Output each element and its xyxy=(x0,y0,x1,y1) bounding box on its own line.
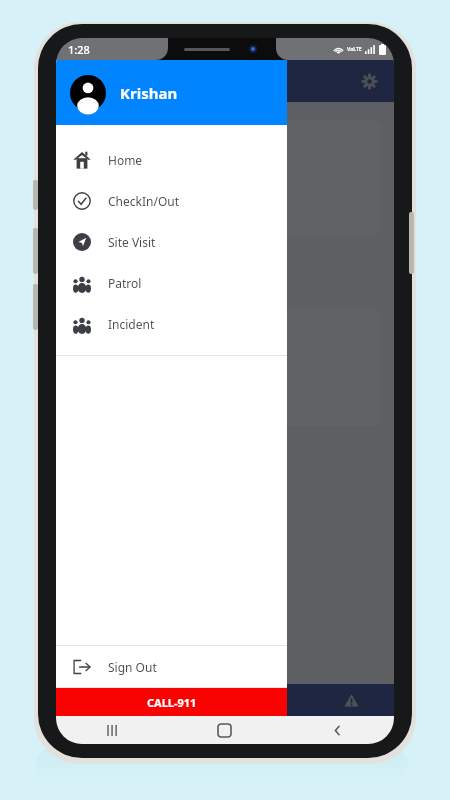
button[interactable]: CALL-911 xyxy=(56,688,287,716)
button[interactable]: Home xyxy=(56,684,140,716)
button[interactable]: CheckIn/Out xyxy=(56,180,287,221)
button[interactable]: Settings xyxy=(356,68,382,94)
button[interactable]: Incident xyxy=(70,309,380,426)
button[interactable]: Incident xyxy=(309,684,394,716)
button[interactable]: Patrol xyxy=(224,684,309,716)
staticText: Sign Out xyxy=(108,659,157,675)
button[interactable]: Home xyxy=(56,139,287,180)
staticText: Site Visit xyxy=(108,234,156,250)
button[interactable]: Krishan xyxy=(70,60,287,125)
button[interactable]: Patrol xyxy=(56,262,287,303)
button[interactable]: Incident xyxy=(56,303,287,344)
staticText: VoLTE xyxy=(347,46,362,53)
button[interactable]: Recents xyxy=(56,716,168,744)
staticText: CheckIn/Out xyxy=(108,193,180,209)
staticText: Patrol xyxy=(108,275,142,291)
button[interactable]: CheckIn xyxy=(140,684,224,716)
staticText: Home xyxy=(108,152,143,168)
button[interactable]: Home xyxy=(168,716,281,744)
staticText: Krishan xyxy=(120,83,178,103)
button[interactable]: Site Visit xyxy=(56,221,287,262)
staticText: CALL-911 xyxy=(147,695,197,710)
button[interactable]: Site Visit xyxy=(70,120,380,237)
button[interactable]: Sign Out xyxy=(56,646,287,687)
staticText: Incident xyxy=(108,316,155,332)
button[interactable]: Back xyxy=(281,716,394,744)
staticText: 1:28 xyxy=(68,42,90,57)
